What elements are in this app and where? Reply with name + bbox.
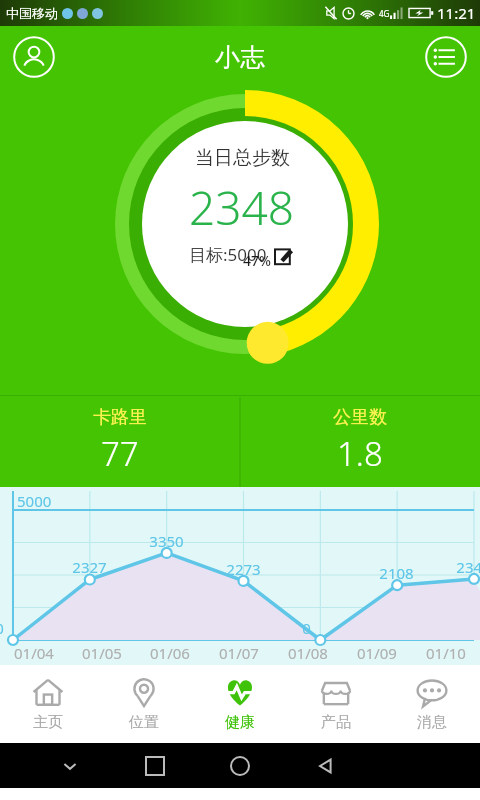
staticText: 2348 — [456, 557, 480, 577]
staticText: 0 — [302, 618, 311, 638]
staticText: 4G — [379, 8, 390, 19]
staticText: 当日总步数 — [195, 146, 290, 170]
button[interactable]: Edit goal — [273, 244, 295, 266]
button[interactable]: 主页 — [0, 665, 96, 743]
staticText: 01/08 — [288, 643, 328, 663]
staticText: 消息 — [417, 713, 447, 732]
button[interactable]: 健康 — [192, 665, 288, 743]
staticText: 产品 — [321, 713, 351, 732]
button[interactable]: Back — [282, 756, 367, 776]
button[interactable]: Profile — [12, 35, 56, 79]
staticText: 小志 — [215, 42, 265, 73]
staticText: 主页 — [33, 713, 63, 732]
staticText: 1.8 — [337, 431, 383, 476]
staticText: 2108 — [379, 563, 414, 583]
staticText: 01/07 — [219, 643, 259, 663]
button[interactable]: Home — [197, 756, 282, 776]
staticText: 2273 — [226, 559, 261, 579]
staticText: 3350 — [149, 531, 184, 551]
staticText: 2327 — [72, 557, 107, 577]
button[interactable]: 消息 — [384, 665, 480, 743]
button[interactable]: 位置 — [96, 665, 192, 743]
staticText: 2348 — [189, 176, 295, 239]
button[interactable]: 公里数 — [240, 395, 480, 487]
staticText: 位置 — [129, 713, 159, 732]
staticText: 01/06 — [150, 643, 190, 663]
button[interactable]: 产品 — [288, 665, 384, 743]
staticText: 01/09 — [357, 643, 397, 663]
staticText: 5000 — [17, 491, 52, 511]
staticText: 77 — [101, 431, 139, 476]
button[interactable]: Menu — [424, 35, 468, 79]
staticText: 01/10 — [426, 643, 466, 663]
staticText: 卡路里 — [93, 406, 147, 429]
staticText: 01/04 — [14, 643, 54, 663]
staticText: 01/05 — [82, 643, 122, 663]
staticText: 公里数 — [333, 406, 387, 429]
staticText: 健康 — [225, 713, 255, 732]
staticText: 11:21 — [437, 3, 476, 23]
button[interactable]: Hide — [28, 758, 112, 774]
button[interactable]: 卡路里 — [0, 395, 240, 487]
staticText: 0 — [0, 618, 4, 638]
staticText: 目标:5000 — [189, 243, 267, 266]
button[interactable]: Recents — [112, 757, 197, 775]
staticText: 中国移动 — [6, 5, 58, 21]
staticText: 47% — [243, 251, 271, 270]
